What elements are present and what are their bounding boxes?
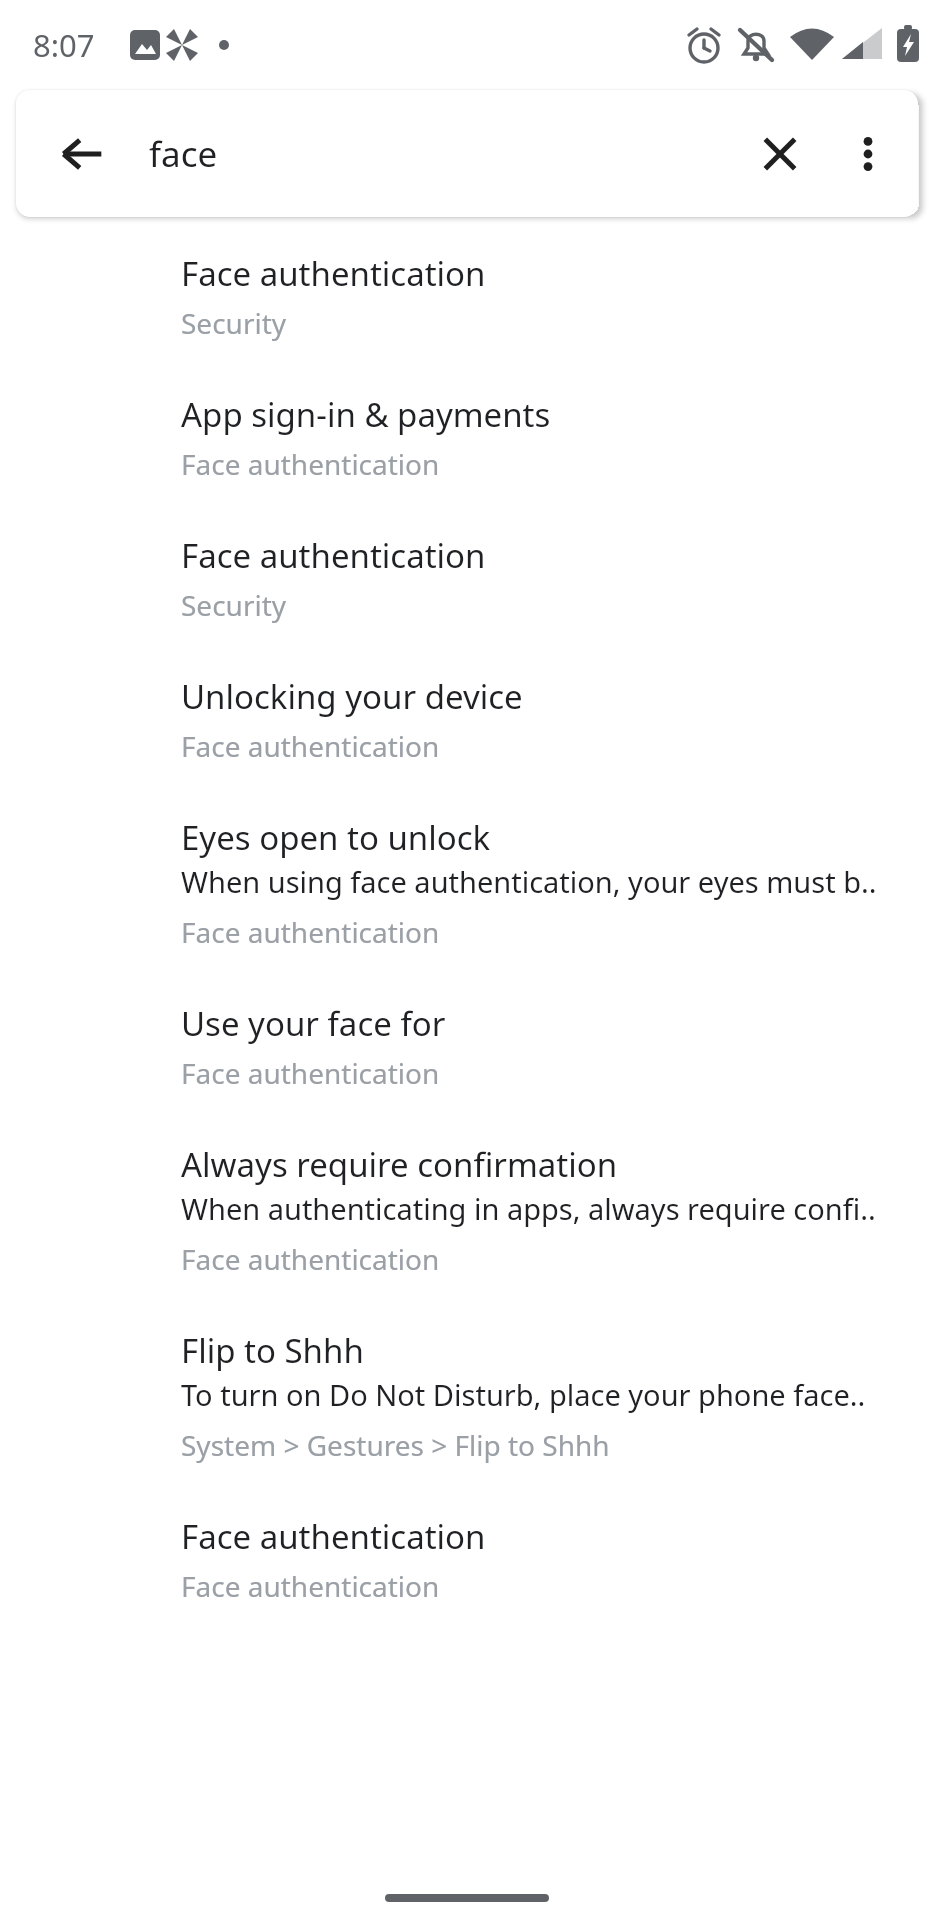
staticText: Always require confirmation <box>181 1142 618 1187</box>
button[interactable]: App sign-in & payments <box>0 368 934 509</box>
staticText: Face authentication <box>181 1514 486 1559</box>
staticText: To turn on Do Not Disturb, place your ph… <box>181 1375 866 1414</box>
staticText: Face authentication <box>181 727 440 765</box>
button[interactable]: Back <box>38 110 126 198</box>
button[interactable]: Eyes open to unlock <box>0 791 934 977</box>
staticText: Unlocking your device <box>181 674 523 719</box>
staticText: Face authentication <box>181 251 486 296</box>
staticText: Security <box>181 586 287 624</box>
button[interactable]: Face authentication <box>0 509 934 650</box>
button[interactable]: Clear search <box>736 110 824 198</box>
button[interactable]: Use your face for <box>0 977 934 1118</box>
staticText: When authenticating in apps, always requ… <box>181 1189 876 1228</box>
staticText: System > Gestures > Flip to Shhh <box>181 1426 610 1464</box>
staticText: 8:07 <box>33 24 95 66</box>
staticText: Face authentication <box>181 533 486 578</box>
staticText: Security <box>181 304 287 342</box>
staticText: Face authentication <box>181 1240 440 1278</box>
staticText: Face authentication <box>181 913 440 951</box>
button[interactable]: More options <box>824 110 912 198</box>
staticText: Flip to Shhh <box>181 1328 364 1373</box>
staticText: face <box>149 130 218 178</box>
button[interactable]: Flip to Shhh <box>0 1304 934 1490</box>
staticText: App sign-in & payments <box>181 392 551 437</box>
button[interactable]: Face authentication <box>0 1490 934 1631</box>
staticText: Use your face for <box>181 1001 446 1046</box>
button[interactable]: Face authentication <box>0 227 934 368</box>
staticText: When using face authentication, your eye… <box>181 862 877 901</box>
staticText: Face authentication <box>181 1054 440 1092</box>
button[interactable]: Always require confirmation <box>0 1118 934 1304</box>
button[interactable]: Unlocking your device <box>0 650 934 791</box>
staticText: Face authentication <box>181 1567 440 1605</box>
staticText: Face authentication <box>181 445 440 483</box>
staticText: Eyes open to unlock <box>181 815 491 860</box>
